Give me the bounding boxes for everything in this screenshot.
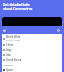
button[interactable]: Search — [57, 29, 60, 32]
staticText: 241,231 cases — [6, 39, 21, 42]
button[interactable]: South Korea — [2, 57, 62, 62]
button[interactable]: Menu — [3, 29, 6, 32]
staticText: Spain — [6, 68, 13, 72]
staticText: World Wide — [6, 35, 21, 39]
staticText: China — [6, 43, 14, 47]
staticText: about Coronavirus — [3, 7, 33, 11]
staticText: South Korea — [6, 58, 22, 62]
staticText: Get detailed info — [3, 3, 30, 7]
button[interactable]: World Wide — [2, 35, 62, 42]
staticText: Italy — [6, 48, 12, 52]
button[interactable]: Spain — [2, 67, 62, 72]
staticText: Iran — [6, 53, 12, 57]
button[interactable]: Iran — [2, 52, 62, 57]
button[interactable]: Italy — [2, 47, 62, 52]
staticText: Countries — [3, 64, 13, 67]
button[interactable]: China — [2, 42, 62, 47]
